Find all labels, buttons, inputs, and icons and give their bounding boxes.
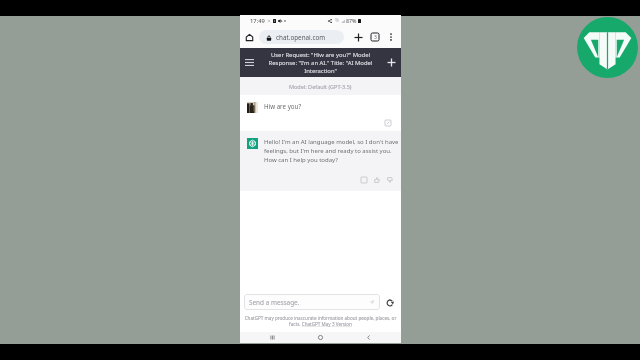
button[interactable]: New chat [382, 48, 401, 77]
button[interactable]: Copy [358, 174, 369, 185]
staticText: % [335, 17, 340, 24]
button[interactable]: Thumbs down [384, 174, 395, 185]
staticText: 17:49 [250, 17, 265, 25]
button[interactable]: Edit message [383, 118, 393, 128]
button[interactable]: Tabs [366, 26, 384, 48]
staticText: 3 [374, 34, 377, 41]
button[interactable]: Home [240, 26, 259, 48]
button[interactable]: Thumbs up [371, 174, 382, 185]
button[interactable]: Regenerate response [382, 295, 397, 310]
staticText: Model: Default (GPT-3.5) [289, 83, 352, 90]
staticText: Send a message. [249, 298, 300, 307]
button[interactable]: Menu [240, 48, 259, 77]
button[interactable]: New tab [351, 26, 366, 48]
button[interactable]: chat.openai.com [259, 30, 344, 44]
button[interactable]: Home [296, 332, 344, 343]
button[interactable]: Channel logo [577, 17, 638, 78]
staticText: User Request: "Hiw are you?" Model Respo… [259, 51, 382, 75]
button[interactable]: Back [344, 332, 392, 343]
button[interactable]: Send a message. [244, 294, 380, 310]
staticText: Hiw are you? [264, 102, 302, 110]
button[interactable]: More options [384, 26, 397, 48]
button[interactable]: Recents [249, 332, 296, 343]
staticText: Hello! I'm an AI language model, so I do… [264, 138, 400, 164]
staticText: 87% [346, 17, 357, 24]
staticText: ChatGPT may produce inaccurate informati… [244, 315, 397, 327]
staticText: chat.openai.com [276, 33, 326, 42]
